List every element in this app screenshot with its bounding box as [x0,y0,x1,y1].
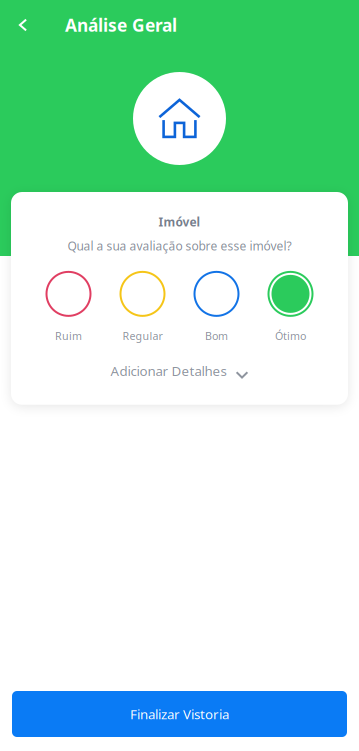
staticText: Qual a sua avaliação sobre esse imóvel? [67,238,291,254]
button[interactable]: Ruim [38,271,98,343]
staticText: Finalizar Vistoria [130,705,229,723]
button[interactable]: Finalizar Vistoria [12,691,347,737]
staticText: Ótimo [275,329,306,343]
staticText: Bom [205,329,228,343]
staticText: Adicionar Detalhes [110,362,226,380]
staticText: Ruim [55,329,82,343]
button[interactable]: Bom [186,271,246,343]
button[interactable]: Adicionar Detalhes [98,352,260,390]
staticText: Imóvel [158,214,200,230]
button[interactable]: Regular [112,271,172,343]
button[interactable]: Ótimo [260,271,320,343]
staticText: Análise Geral [65,13,177,36]
button[interactable]: Back [3,5,43,45]
staticText: Regular [122,329,162,343]
